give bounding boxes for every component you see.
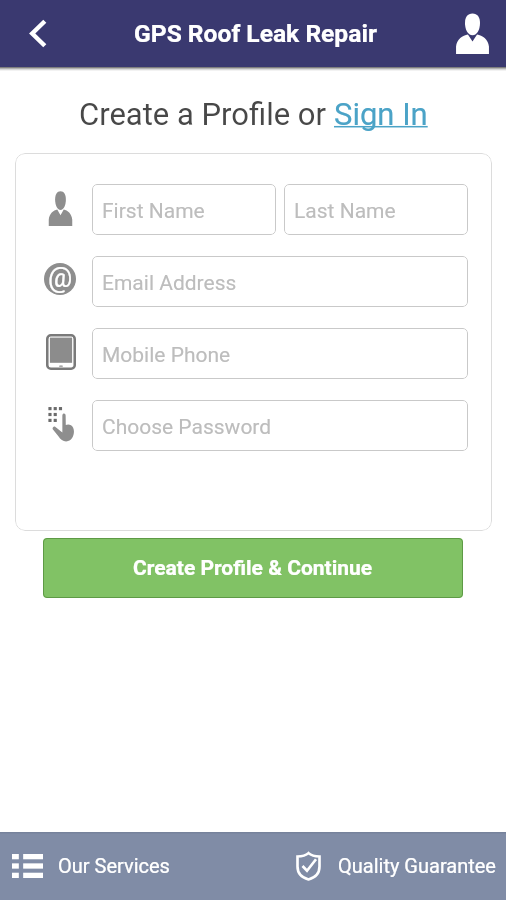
button[interactable]: Sign In (334, 96, 428, 132)
button[interactable]: Create Profile & Continue (43, 538, 463, 598)
staticText: Create a Profile or (79, 96, 334, 132)
staticText: Quality Guarantee (338, 854, 496, 877)
button[interactable]: Choose Password (92, 400, 468, 451)
button[interactable]: Email Address (92, 256, 468, 307)
staticText: @ (48, 263, 73, 294)
button[interactable]: First Name (92, 184, 276, 235)
staticText: Create Profile & Continue (133, 556, 373, 581)
button[interactable]: Back (0, 0, 74, 67)
button[interactable]: Mobile Phone (92, 328, 468, 379)
staticText: Mobile Phone (102, 343, 231, 368)
staticText: GPS Roof Leak Repair (134, 19, 377, 48)
staticText: Last Name (294, 199, 396, 224)
button[interactable]: Our Services (0, 832, 296, 900)
staticText: Our Services (58, 854, 170, 877)
button[interactable]: Quality Guarantee (296, 832, 506, 900)
button[interactable]: Profile (440, 0, 506, 67)
staticText: Email Address (102, 271, 237, 296)
staticText: First Name (102, 199, 205, 224)
staticText: Sign In (334, 96, 428, 132)
staticText: Choose Password (102, 415, 272, 440)
button[interactable]: Last Name (284, 184, 468, 235)
